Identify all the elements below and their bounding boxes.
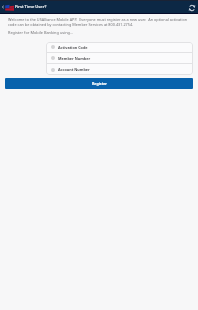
button[interactable]: Refresh: [186, 2, 197, 13]
button[interactable]: Register: [5, 78, 193, 89]
staticText: Register for Mobile Banking using...: [8, 30, 74, 35]
button[interactable]: Account Number: [46, 64, 193, 75]
staticText: Register: [92, 81, 107, 86]
button[interactable]: Member Number: [46, 53, 193, 63]
staticText: Account Number: [58, 67, 90, 72]
staticText: Member Number: [58, 56, 91, 61]
staticText: First Time User?: [15, 4, 47, 10]
button[interactable]: Activation Code: [46, 42, 193, 52]
button[interactable]: Back: [1, 1, 5, 13]
staticText: Activation Code: [58, 45, 88, 50]
staticText: Welcome to the USAlliance Mobile APP. Ev…: [8, 17, 191, 27]
